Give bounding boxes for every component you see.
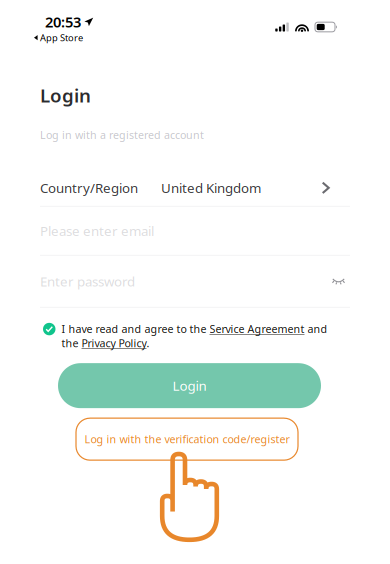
button[interactable]: Show password [327, 272, 350, 290]
button[interactable]: Please enter email [0, 207, 390, 255]
staticText: United Kingdom [161, 179, 261, 197]
staticText: Login [172, 377, 206, 394]
staticText: Enter password [40, 272, 135, 290]
button[interactable]: Country/Region [0, 170, 390, 206]
staticText: 20:53 [45, 12, 81, 31]
staticText: I have read and agree to the Service Agr… [61, 322, 327, 350]
staticText: App Store [40, 31, 83, 44]
button[interactable]: Log in with the verification code/regist… [76, 418, 298, 460]
staticText: Country/Region [40, 179, 138, 197]
staticText: Log in with the verification code/regist… [84, 432, 289, 446]
button[interactable]: Agree to Service Agreement and Privacy P… [43, 322, 55, 335]
staticText: Please enter email [40, 222, 154, 240]
staticText: Log in with a registered account [40, 128, 204, 142]
button[interactable]: Login [58, 363, 321, 408]
staticText: Login [40, 83, 91, 108]
